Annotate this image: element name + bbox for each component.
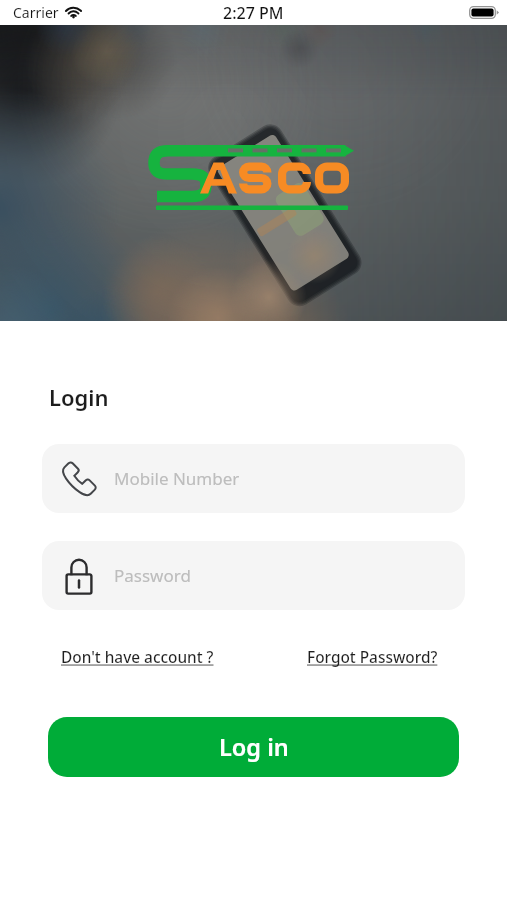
staticText: Carrier <box>13 3 59 22</box>
staticText: 2:27 PM <box>223 2 284 24</box>
other: Password <box>65 558 93 595</box>
other: Mobile Number <box>60 460 98 498</box>
staticText: Login <box>49 382 109 412</box>
staticText: Log in <box>219 731 289 763</box>
button[interactable]: Don't have account ? <box>61 647 214 668</box>
button[interactable]: Password <box>42 541 465 610</box>
button[interactable]: Log in <box>48 717 459 777</box>
staticText: Password <box>114 564 191 587</box>
button[interactable]: Mobile Number <box>42 444 465 513</box>
button[interactable]: Forgot Password? <box>307 647 438 668</box>
staticText: Mobile Number <box>114 467 240 490</box>
